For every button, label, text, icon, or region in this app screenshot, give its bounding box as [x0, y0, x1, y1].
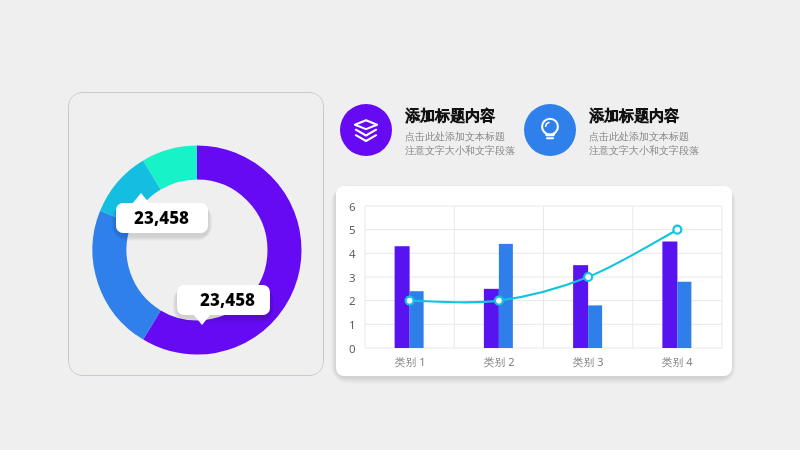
staticText: 点击此处添加文本标题 [405, 130, 505, 143]
staticText: 2 [349, 293, 356, 309]
staticText: 添加标题内容 [405, 107, 495, 126]
staticText: 注意文字大小和文字段落 [405, 144, 515, 157]
staticText: 0 [349, 341, 356, 357]
staticText: 类别 4 [661, 354, 693, 369]
staticText: 6 [349, 199, 356, 215]
other: Idea [524, 104, 576, 156]
button[interactable]: Layers [340, 104, 515, 156]
staticText: 点击此处添加文本标题 [589, 130, 689, 143]
staticText: 添加标题内容 [589, 107, 679, 126]
staticText: 类别 2 [483, 354, 515, 369]
staticText: 23,458 [200, 288, 256, 311]
staticText: 3 [349, 270, 356, 286]
button[interactable]: 0 [336, 186, 732, 376]
other: Layers [340, 104, 392, 156]
staticText: 4 [349, 246, 356, 262]
staticText: 注意文字大小和文字段落 [589, 144, 699, 157]
staticText: 类别 3 [572, 354, 604, 369]
staticText: 5 [349, 222, 356, 238]
staticText: 类别 1 [394, 354, 426, 369]
staticText: 1 [349, 317, 356, 333]
button[interactable] [68, 92, 324, 376]
button[interactable]: Idea [524, 104, 699, 156]
staticText: 23,458 [134, 206, 190, 229]
